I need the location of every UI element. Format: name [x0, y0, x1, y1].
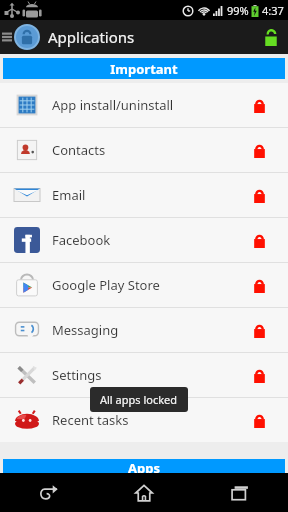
- button[interactable]: Google Play Store: [0, 263, 288, 307]
- staticText: Facebook: [52, 231, 111, 249]
- button[interactable]: Recent tasks: [0, 398, 288, 442]
- staticText: Apps: [128, 459, 160, 473]
- staticText: Applications: [48, 27, 135, 47]
- staticText: Email: [52, 186, 86, 204]
- staticText: Google Play Store: [52, 276, 160, 294]
- staticText: Important: [110, 60, 178, 78]
- staticText: Recent tasks: [52, 411, 129, 429]
- staticText: 99%: [227, 3, 249, 18]
- staticText: 4:37: [262, 3, 284, 18]
- button[interactable]: Facebook: [0, 218, 288, 262]
- button[interactable]: App install/uninstall: [0, 83, 288, 127]
- staticText: Settings: [52, 366, 102, 384]
- staticText: All apps locked: [100, 392, 178, 407]
- button[interactable]: Contacts: [0, 128, 288, 172]
- button[interactable]: Messaging: [0, 308, 288, 352]
- button[interactable]: Recents: [192, 473, 288, 512]
- button[interactable]: Unlock: [254, 20, 288, 54]
- button[interactable]: Apps: [3, 459, 285, 473]
- staticText: App install/uninstall: [52, 96, 174, 114]
- button[interactable]: Important: [3, 58, 285, 79]
- button[interactable]: App icon: [14, 24, 40, 50]
- staticText: Contacts: [52, 141, 106, 159]
- staticText: Messaging: [52, 321, 119, 339]
- button[interactable]: Menu: [0, 20, 14, 54]
- button[interactable]: Home: [96, 473, 192, 512]
- button[interactable]: Settings: [0, 353, 288, 397]
- button[interactable]: Back: [0, 473, 96, 512]
- button[interactable]: Email: [0, 173, 288, 217]
